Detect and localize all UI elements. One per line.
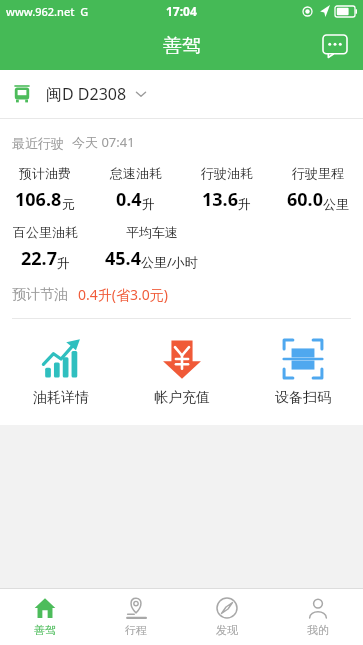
staticText: 预计油费 [19, 165, 71, 181]
staticText: 17:04 [166, 3, 197, 19]
staticText: 闽D D2308 [46, 83, 127, 105]
button[interactable]: 行程 [90, 589, 181, 645]
staticText: 怠速油耗 [110, 165, 162, 181]
staticText: 22.7 [21, 246, 57, 271]
staticText: 发现 [216, 623, 238, 637]
staticText: 预计节油 [12, 286, 68, 304]
button[interactable]: 善驾 [0, 589, 90, 645]
staticText: 平均车速 [126, 224, 178, 240]
button[interactable]: Messages [317, 28, 353, 64]
button[interactable]: 我的 [272, 589, 363, 645]
staticText: 13.6 [202, 187, 238, 212]
staticText: 善驾 [34, 623, 56, 637]
staticText: 今天 07:41 [72, 133, 135, 151]
staticText: 0.4升(省3.0元) [78, 285, 168, 304]
staticText: 设备扫码 [275, 389, 331, 407]
button[interactable]: 发现 [181, 589, 272, 645]
button[interactable]: 设备扫码 [242, 333, 363, 411]
staticText: 升 [57, 255, 70, 271]
staticText: 元 [62, 196, 75, 212]
staticText: 行程 [125, 623, 147, 637]
staticText: 油耗详情 [33, 389, 89, 407]
staticText: 行驶油耗 [201, 165, 253, 181]
staticText: www.962.net G [6, 4, 89, 19]
staticText: 公里/小时 [141, 253, 198, 271]
staticText: 升 [238, 196, 251, 212]
staticText: 60.0 [287, 187, 323, 212]
button[interactable]: 帐户充值 [121, 333, 242, 411]
staticText: 45.4 [105, 246, 141, 271]
staticText: 公里 [323, 196, 349, 212]
button[interactable]: 油耗详情 [0, 333, 121, 411]
staticText: 最近行驶 [12, 135, 64, 151]
staticText: 0.4 [116, 187, 142, 212]
staticText: 善驾 [163, 34, 201, 58]
staticText: 我的 [307, 623, 329, 637]
staticText: 帐户充值 [154, 389, 210, 407]
staticText: 行驶里程 [292, 165, 344, 181]
staticText: 百公里油耗 [13, 224, 78, 240]
button[interactable]: 闽D D2308 [0, 70, 363, 118]
staticText: 106.8 [15, 187, 62, 212]
staticText: 升 [142, 196, 155, 212]
